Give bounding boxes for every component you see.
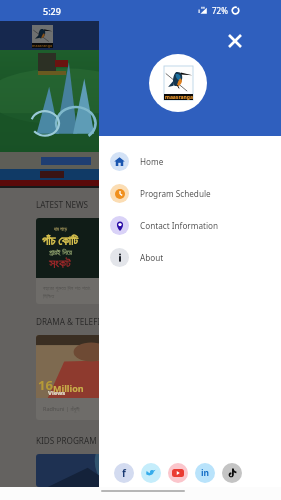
button[interactable]: YouTube [168,463,188,483]
staticText: About [140,252,164,263]
staticText: দাম সাড়ে [54,226,67,232]
button[interactable]: LinkedIn [195,463,215,483]
staticText: maasranga [32,43,53,48]
staticText: নিশ্চিত [43,294,55,300]
staticText: f [122,466,126,480]
staticText: KIDS PROGRAM [36,435,97,446]
button[interactable]: Program Schedule [99,177,281,209]
staticText: বছরের শুরুতে দিন শত শতাং [43,284,91,291]
staticText: 5:29 [43,5,61,17]
staticText: 16 [38,376,53,394]
staticText: maasranga [165,94,193,100]
staticText: 72% [212,5,228,16]
button[interactable]: Home [99,145,281,177]
button[interactable]: Contact Information [99,209,281,241]
staticText: প্রায়ই নিয়ে [49,248,72,258]
button[interactable]: Close drawer [223,29,247,53]
staticText: in [201,467,210,479]
staticText: সংকট [49,258,71,270]
staticText: Radhuni | রাঁধুনী [43,405,80,412]
staticText: DRAMA & TELEFILM [36,316,112,327]
staticText: LATEST NEWS [36,199,89,210]
button[interactable]: Facebook [114,463,134,483]
staticText: পাঁচ কোটি [42,232,78,248]
button[interactable]: TikTok [222,463,242,483]
staticText: Contact Information [140,220,219,231]
button[interactable]: Twitter [141,463,161,483]
staticText: Program Schedule [140,188,211,199]
staticText: Views [48,389,66,397]
staticText: Home [140,156,164,167]
button[interactable]: About [99,241,281,273]
staticText: Million [53,382,84,394]
